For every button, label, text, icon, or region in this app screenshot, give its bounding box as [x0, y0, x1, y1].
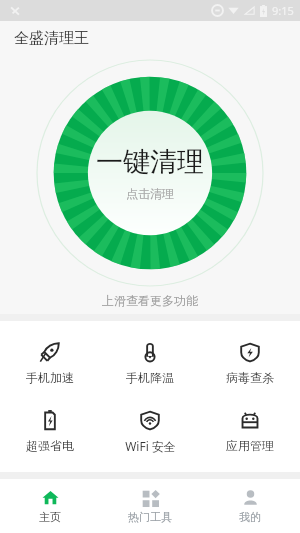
button[interactable]: 手机降温: [100, 335, 200, 391]
button[interactable]: 热门工具: [100, 479, 200, 533]
staticText: 热门工具: [128, 510, 172, 524]
staticText: 应用管理: [226, 438, 274, 453]
staticText: WiFi 安全: [125, 438, 176, 454]
button[interactable]: WiFi 安全: [100, 403, 200, 460]
staticText: 点击清理: [126, 186, 174, 201]
button[interactable]: 病毒查杀: [200, 335, 300, 391]
staticText: 一键清理: [96, 145, 204, 179]
button[interactable]: 超强省电: [0, 403, 100, 459]
button[interactable]: 手机加速: [0, 335, 100, 391]
staticText: 主页: [39, 510, 61, 524]
button[interactable]: 一键清理: [36, 59, 264, 287]
staticText: 病毒查杀: [226, 370, 274, 385]
staticText: 超强省电: [26, 438, 74, 453]
staticText: 手机加速: [26, 370, 74, 385]
button[interactable]: 主页: [0, 479, 100, 533]
staticText: 我的: [239, 510, 261, 524]
staticText: 9:15: [272, 3, 294, 18]
staticText: 上滑查看更多功能: [102, 293, 198, 308]
staticText: 手机降温: [126, 370, 174, 385]
button[interactable]: 我的: [200, 479, 300, 533]
staticText: 全盛清理王: [14, 29, 89, 48]
button[interactable]: 应用管理: [200, 403, 300, 459]
